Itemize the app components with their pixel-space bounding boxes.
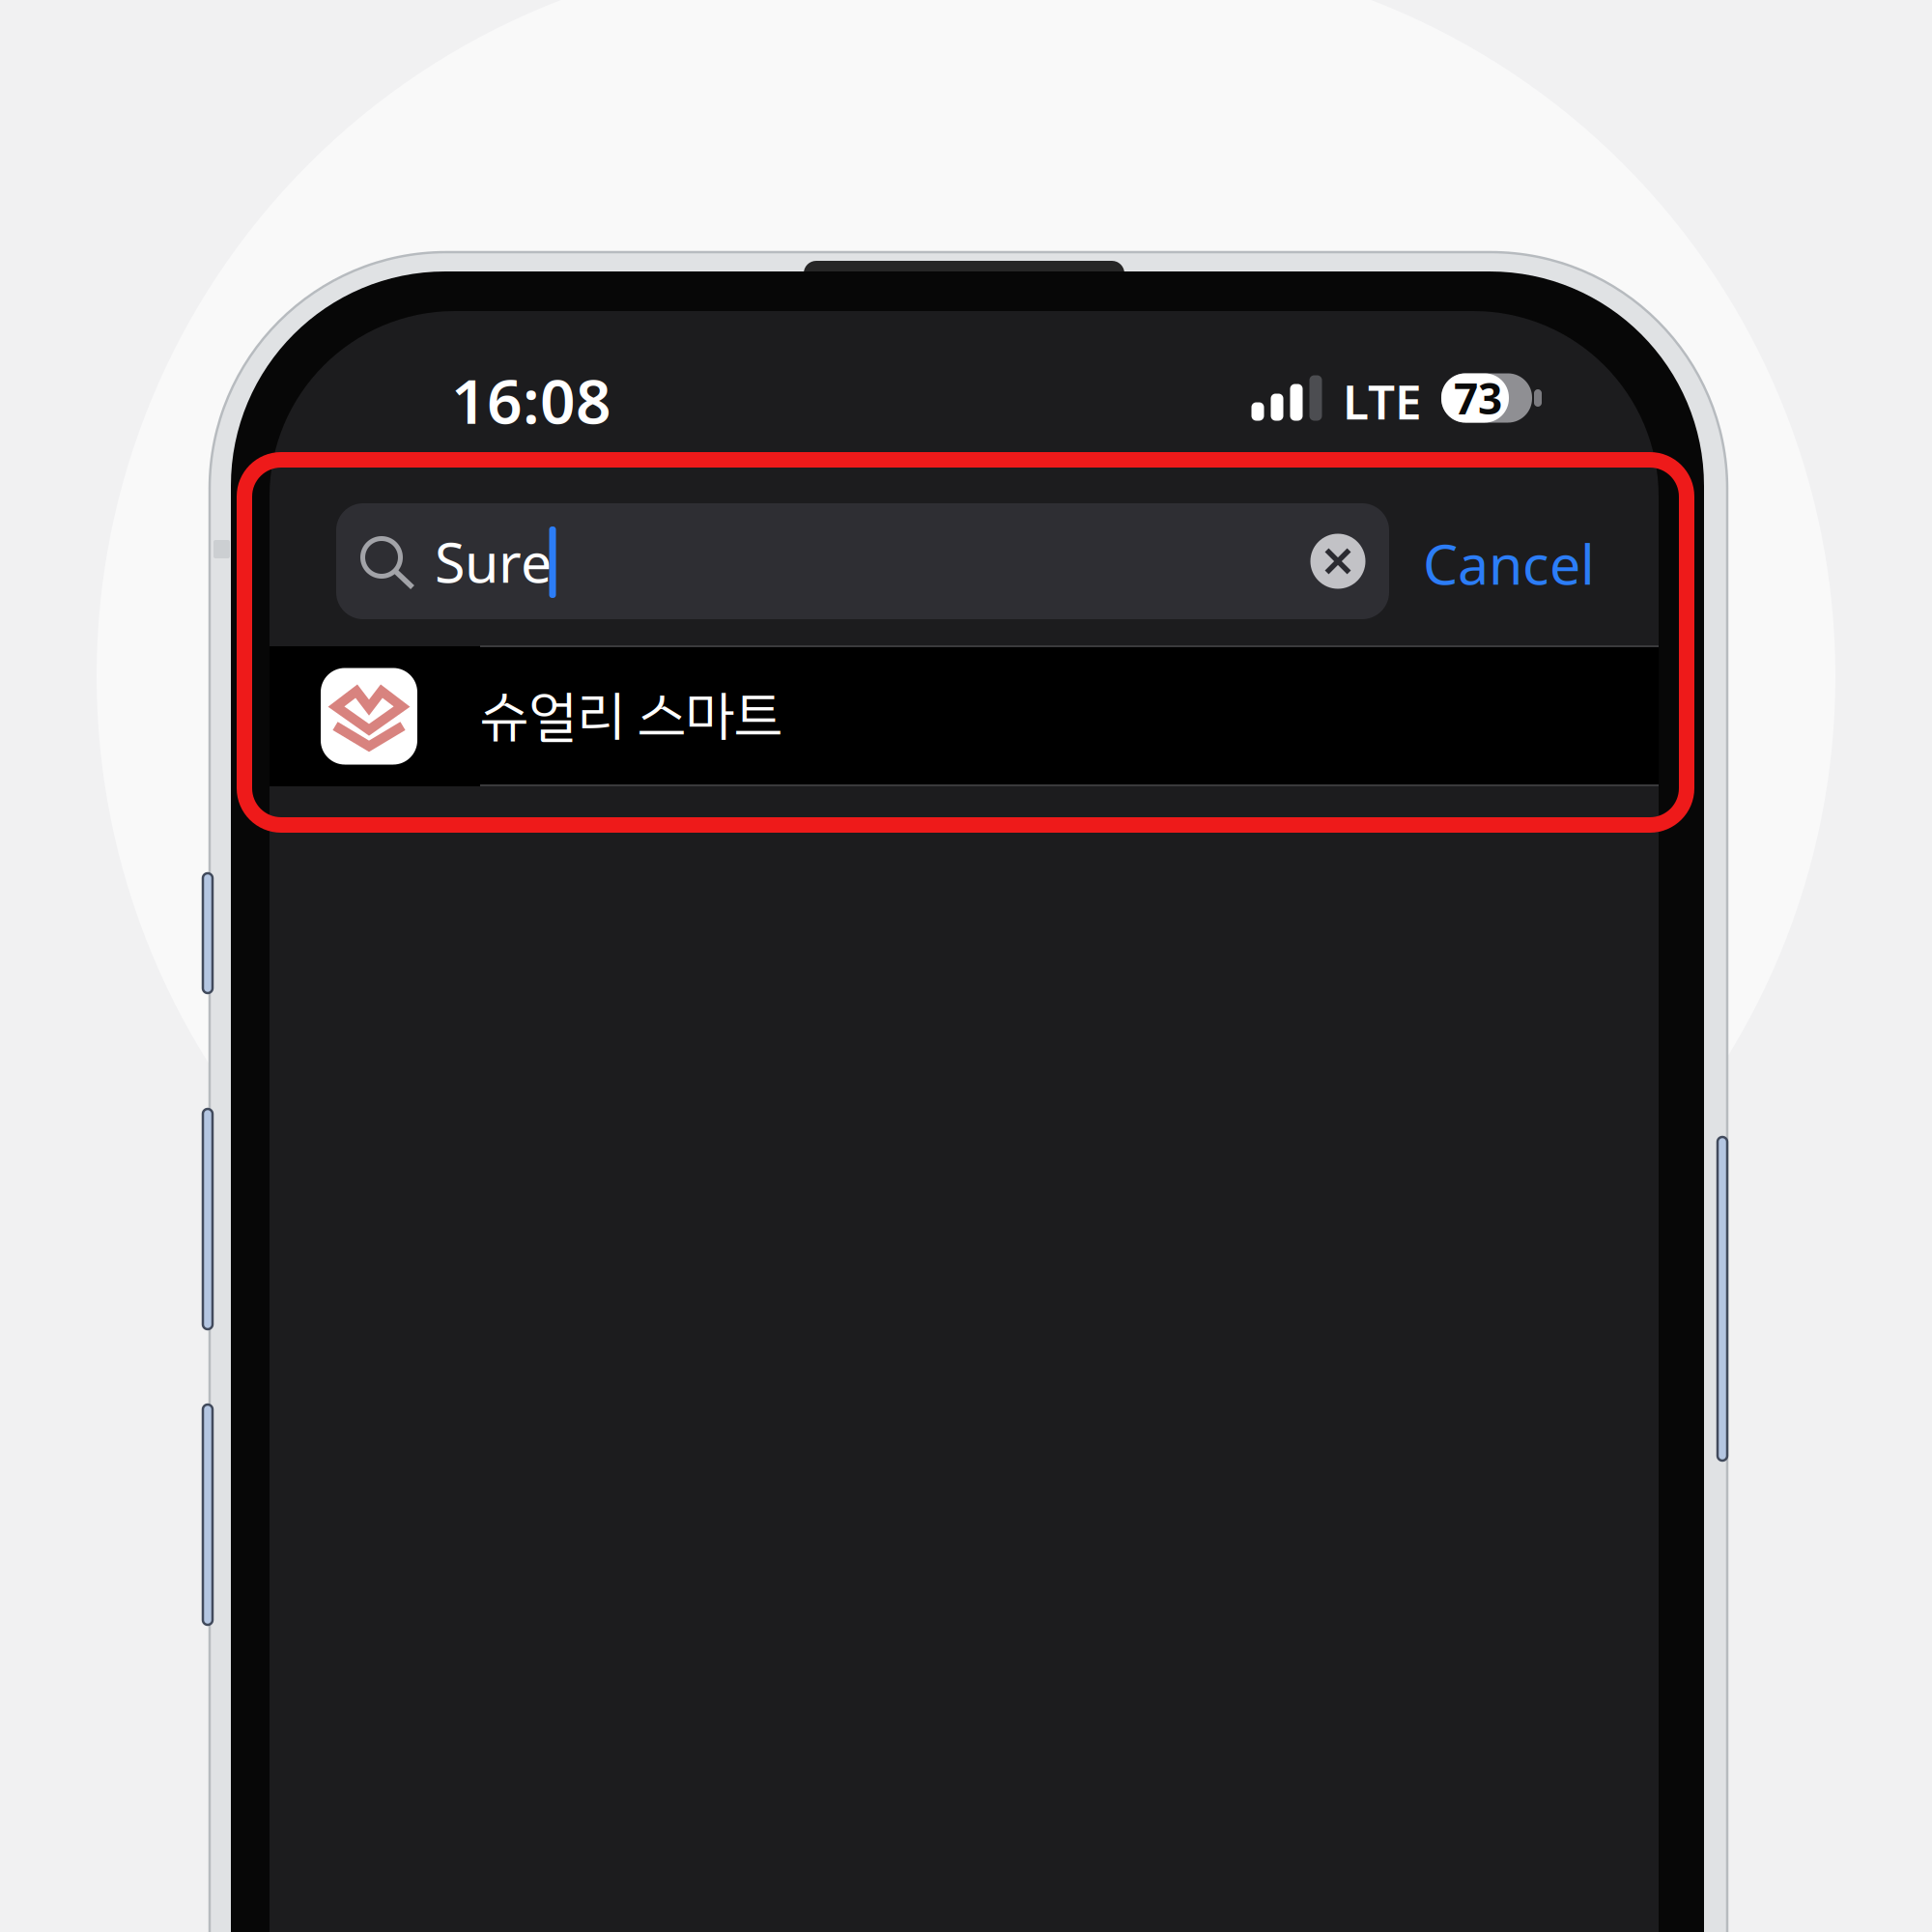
staticText: Sure <box>435 524 552 598</box>
staticText: 슈얼리 스마트 <box>480 676 782 757</box>
staticText: 73 <box>1454 370 1502 426</box>
staticText: Cancel <box>1423 526 1595 600</box>
staticText: 16:08 <box>451 359 611 441</box>
button[interactable]: Clear text <box>1310 534 1365 589</box>
button[interactable]: 슈얼리 스마트 <box>270 646 1659 786</box>
staticText: LTE <box>1343 369 1422 432</box>
button[interactable]: Cancel <box>1423 526 1595 600</box>
button[interactable]: Sure <box>336 503 1389 619</box>
